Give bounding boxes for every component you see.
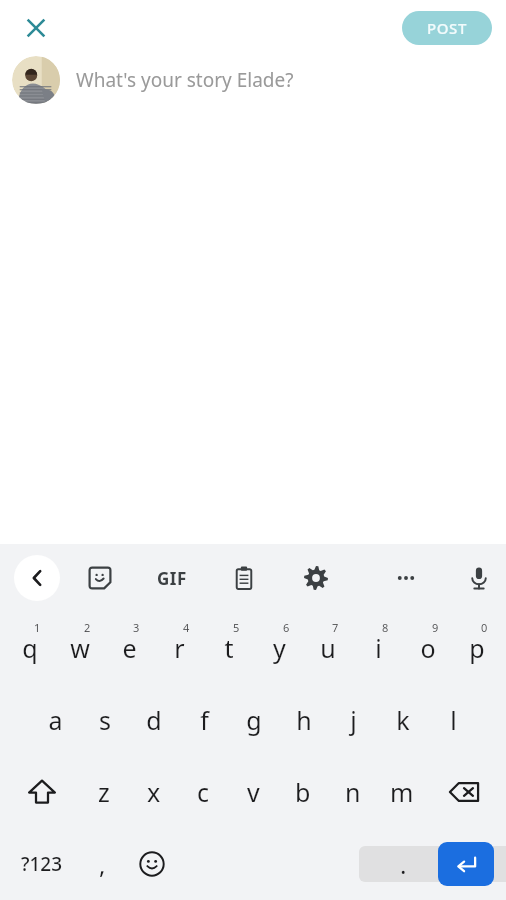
staticText: t: [224, 631, 234, 665]
staticText: 5: [233, 620, 240, 635]
staticText: k: [396, 703, 410, 737]
staticText: s: [99, 703, 111, 737]
staticText: n: [345, 775, 361, 809]
button[interactable]: r: [155, 612, 203, 684]
button[interactable]: Voice input: [457, 556, 501, 600]
staticText: q: [22, 631, 38, 665]
button[interactable]: Space: [359, 846, 506, 882]
staticText: h: [296, 703, 312, 737]
staticText: g: [246, 703, 262, 737]
button[interactable]: f: [180, 684, 228, 756]
button[interactable]: Shift: [14, 764, 70, 820]
button[interactable]: y: [255, 612, 303, 684]
staticText: f: [200, 703, 209, 737]
staticText: 6: [283, 620, 290, 635]
button[interactable]: s: [81, 684, 129, 756]
button[interactable]: What's your story Elade?: [76, 56, 490, 104]
button[interactable]: w: [56, 612, 104, 684]
staticText: m: [390, 775, 414, 809]
staticText: d: [146, 703, 162, 737]
staticText: y: [273, 631, 286, 665]
staticText: x: [147, 775, 161, 809]
staticText: u: [320, 631, 336, 665]
staticText: 3: [133, 620, 140, 635]
staticText: 7: [332, 620, 339, 635]
button[interactable]: POST: [402, 11, 492, 45]
button[interactable]: m: [378, 756, 426, 828]
staticText: 2: [84, 620, 91, 635]
staticText: p: [469, 631, 485, 665]
staticText: l: [450, 703, 457, 737]
button[interactable]: More options: [384, 556, 428, 600]
button[interactable]: j: [329, 684, 377, 756]
staticText: ,: [99, 848, 106, 881]
staticText: z: [98, 775, 110, 809]
button[interactable]: h: [280, 684, 328, 756]
button[interactable]: v: [229, 756, 277, 828]
staticText: e: [122, 631, 137, 665]
button[interactable]: u: [304, 612, 352, 684]
button[interactable]: e: [105, 612, 153, 684]
button[interactable]: c: [179, 756, 227, 828]
button[interactable]: Stickers: [78, 556, 122, 600]
button[interactable]: g: [230, 684, 278, 756]
staticText: ?123: [21, 851, 63, 877]
staticText: POST: [427, 18, 467, 38]
staticText: i: [375, 631, 382, 665]
button[interactable]: GIF: [150, 556, 194, 600]
button[interactable]: x: [130, 756, 178, 828]
button[interactable]: b: [279, 756, 327, 828]
button[interactable]: z: [80, 756, 128, 828]
staticText: a: [48, 703, 63, 737]
staticText: 8: [382, 620, 389, 635]
staticText: b: [295, 775, 311, 809]
staticText: w: [70, 631, 90, 665]
button[interactable]: i: [354, 612, 402, 684]
button[interactable]: .: [381, 842, 425, 886]
staticText: v: [247, 775, 260, 809]
staticText: c: [197, 775, 210, 809]
button[interactable]: q: [6, 612, 54, 684]
button[interactable]: Back: [14, 555, 60, 601]
staticText: r: [174, 631, 185, 665]
button[interactable]: Enter: [438, 842, 494, 886]
staticText: 0: [481, 620, 488, 635]
button[interactable]: l: [429, 684, 477, 756]
staticText: 9: [432, 620, 439, 635]
button[interactable]: Keyboard settings: [294, 556, 338, 600]
button[interactable]: Emoji: [128, 840, 176, 888]
button[interactable]: p: [453, 612, 501, 684]
button[interactable]: Clipboard: [222, 556, 266, 600]
button[interactable]: Close: [16, 8, 56, 48]
staticText: o: [420, 631, 436, 665]
staticText: .: [400, 848, 407, 881]
staticText: What's your story Elade?: [76, 67, 294, 93]
button[interactable]: o: [404, 612, 452, 684]
button[interactable]: k: [379, 684, 427, 756]
button[interactable]: Backspace: [436, 764, 492, 820]
staticText: GIF: [157, 567, 187, 590]
button[interactable]: t: [205, 612, 253, 684]
button[interactable]: ?123: [10, 828, 74, 900]
staticText: 4: [183, 620, 190, 635]
button[interactable]: Profile photo: [12, 56, 60, 104]
button[interactable]: a: [31, 684, 79, 756]
button[interactable]: ,: [80, 842, 124, 886]
staticText: 1: [34, 620, 41, 635]
button[interactable]: d: [130, 684, 178, 756]
button[interactable]: n: [329, 756, 377, 828]
staticText: j: [350, 703, 357, 737]
